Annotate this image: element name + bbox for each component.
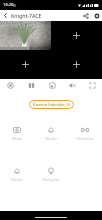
button[interactable]: Back xyxy=(0,10,11,21)
staticText: Bilder xyxy=(12,136,22,141)
button[interactable]: Camera 1 live view xyxy=(0,21,51,50)
staticText: Varsler xyxy=(11,177,23,182)
button[interactable]: Sound off xyxy=(62,79,82,92)
button[interactable]: Kamera frakoblet xyxy=(29,100,74,109)
button[interactable]: Screenshot xyxy=(42,79,62,92)
button[interactable]: Add camera xyxy=(51,50,102,79)
staticText: Bevegelse xyxy=(42,177,60,182)
button[interactable]: Settings xyxy=(91,10,102,21)
button[interactable]: Add camera xyxy=(51,21,102,50)
staticText: Varsler xyxy=(45,136,57,141)
staticText: Knight-7ACE xyxy=(11,12,42,19)
button[interactable]: Share xyxy=(80,10,91,21)
button[interactable]: Full screen xyxy=(82,79,102,92)
button[interactable]: Hendelser xyxy=(68,126,102,141)
button[interactable]: Varsler xyxy=(34,126,68,141)
button[interactable]: Add camera xyxy=(0,50,51,79)
button[interactable]: Talk xyxy=(0,79,21,92)
button[interactable]: Split view xyxy=(21,79,42,92)
staticText: Hendelser xyxy=(76,136,94,141)
button[interactable]: Bilder xyxy=(0,126,34,141)
button[interactable]: Bevegelse xyxy=(34,167,68,182)
button[interactable]: Varsler xyxy=(0,167,34,182)
staticText: 16:26 xyxy=(3,2,14,8)
staticText: Kamera frakoblet xyxy=(33,102,65,107)
